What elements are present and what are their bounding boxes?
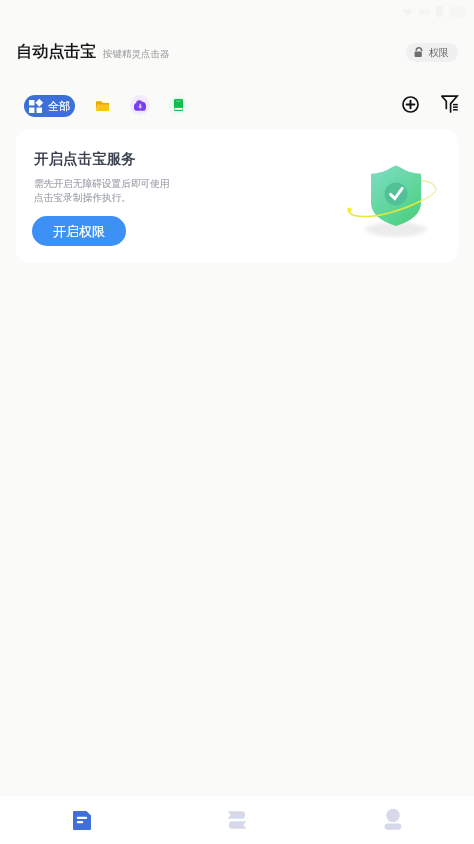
button[interactable]: Book category [168, 95, 188, 115]
button[interactable]: Library [158, 796, 316, 844]
staticText: 开启点击宝服务 [34, 150, 136, 168]
staticText: 按键精灵点击器 [103, 48, 170, 60]
button[interactable]: 开启点击宝服务 [16, 129, 458, 263]
staticText: 权限 [429, 46, 449, 59]
button[interactable]: Cloud category [130, 95, 150, 115]
staticText: 自动点击宝 [16, 42, 96, 62]
button[interactable]: Scripts [0, 796, 158, 844]
button[interactable]: 全部 [24, 95, 75, 117]
staticText: 全部 [48, 99, 70, 113]
button[interactable]: 权限 [406, 43, 458, 62]
staticText: 需先开启无障碍设置后即可使用 点击宝录制操作执行。 [34, 178, 170, 204]
button[interactable]: Profile [316, 796, 474, 844]
button[interactable]: Folder category [92, 95, 112, 115]
button[interactable]: 开启权限 [32, 216, 126, 246]
staticText: 开启权限 [53, 223, 105, 239]
button[interactable]: Add [394, 90, 426, 122]
button[interactable]: Filter [433, 90, 465, 122]
